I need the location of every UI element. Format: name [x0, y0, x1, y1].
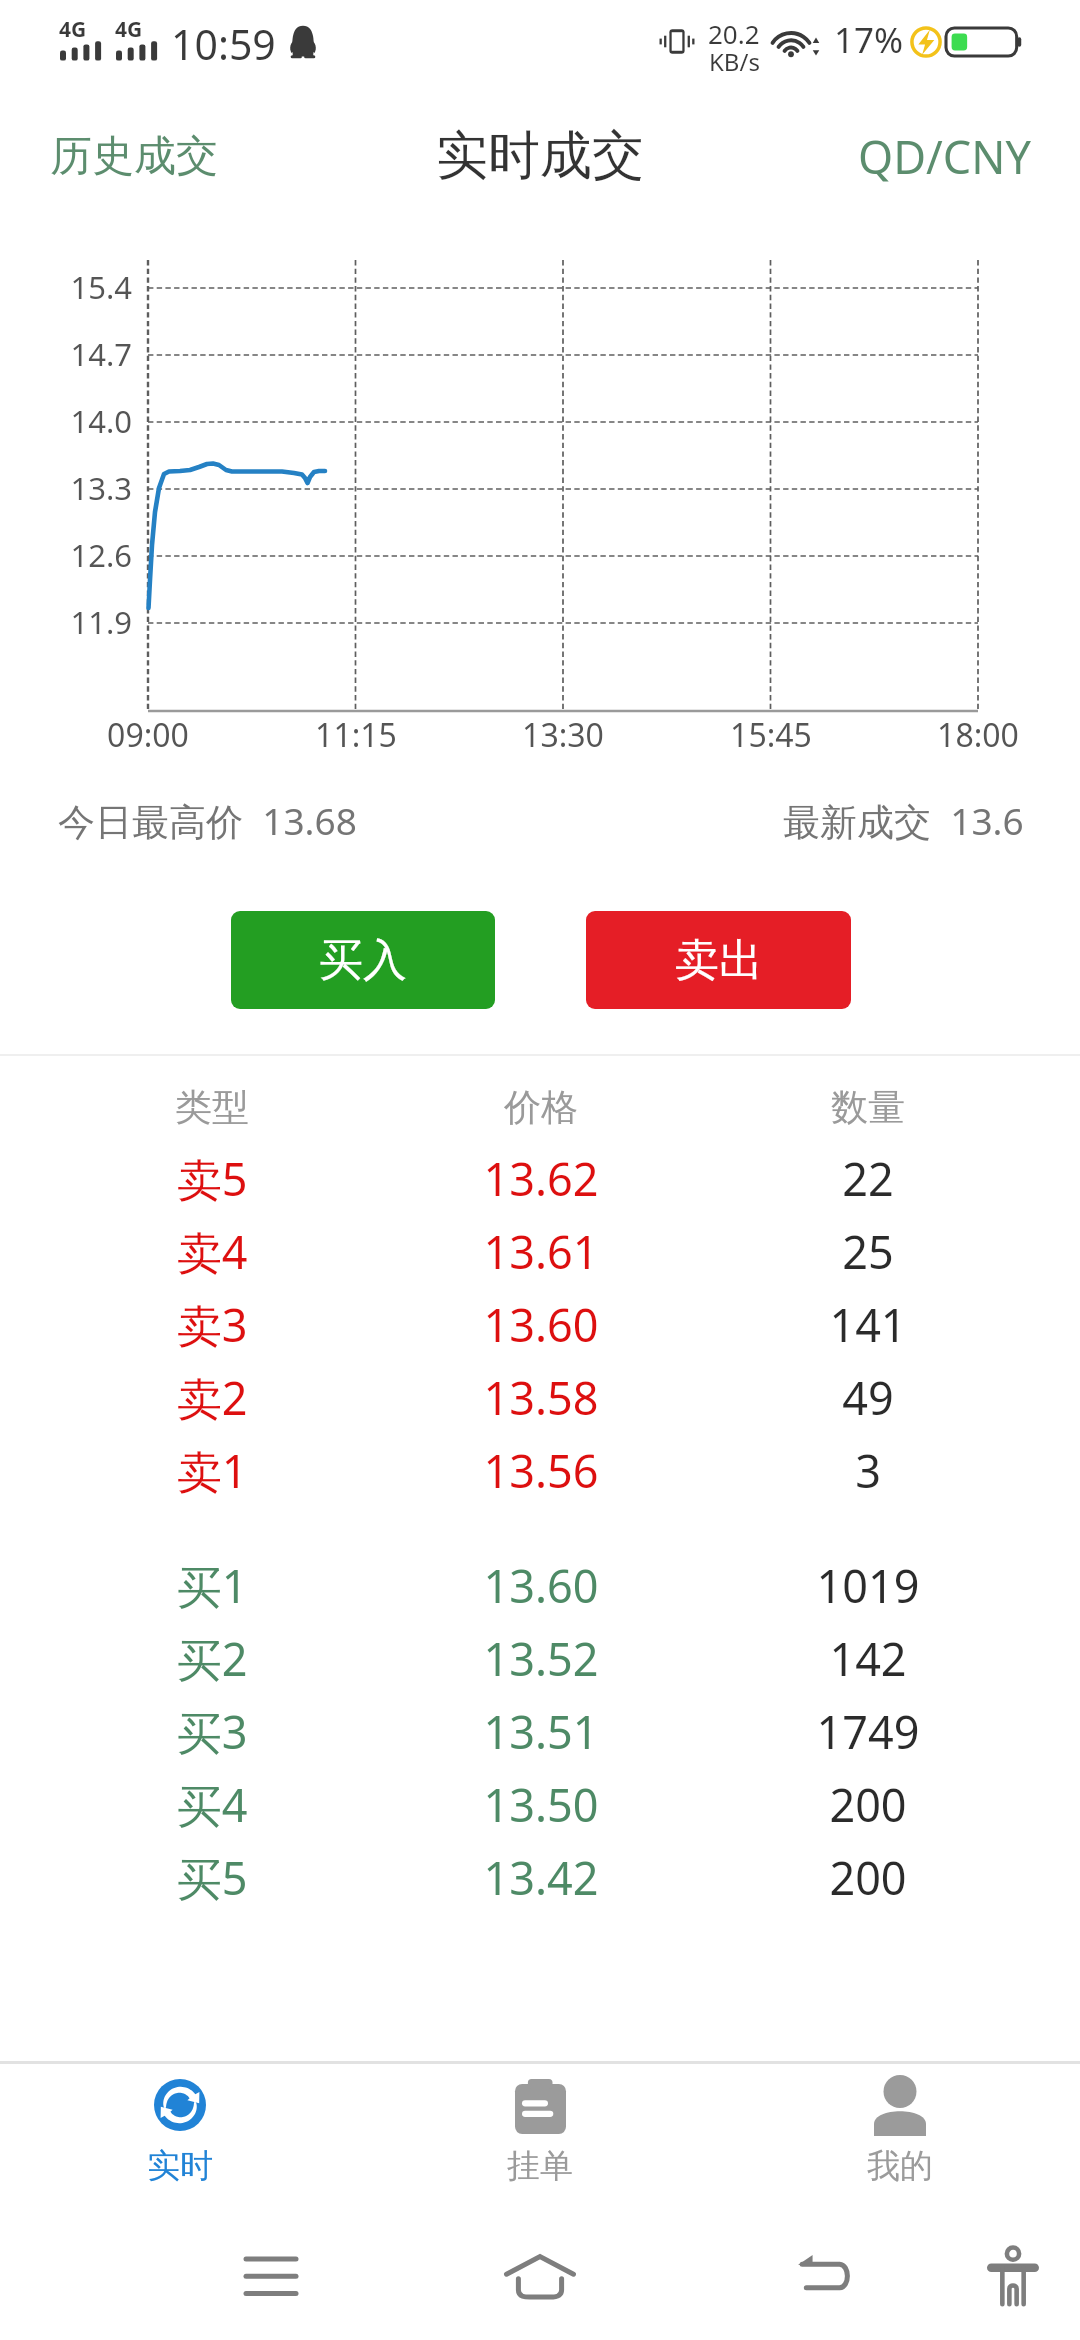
- staticText: 买5: [112, 1847, 312, 1908]
- button[interactable]: 买2: [0, 1622, 1080, 1694]
- button[interactable]: 买4: [0, 1768, 1080, 1840]
- staticText: 价格: [441, 1084, 641, 1131]
- staticText: 13.52: [441, 1628, 641, 1689]
- staticText: 13.3: [0, 467, 132, 509]
- staticText: 10:59: [171, 16, 276, 72]
- staticText: 最新成交 13.6: [783, 795, 1024, 845]
- staticText: 13.42: [441, 1847, 641, 1908]
- staticText: 49: [768, 1367, 968, 1428]
- staticText: 买4: [112, 1774, 312, 1835]
- staticText: 13.51: [441, 1701, 641, 1762]
- staticText: 20.2: [708, 16, 760, 51]
- button[interactable]: 卖出: [586, 911, 851, 1009]
- staticText: 实时成交: [436, 123, 644, 189]
- staticText: 142: [768, 1628, 968, 1689]
- staticText: 11:15: [286, 713, 426, 757]
- staticText: 今日最高价 13.68: [58, 795, 357, 845]
- staticText: 13.61: [441, 1221, 641, 1282]
- staticText: 实时: [147, 2145, 213, 2187]
- staticText: 买2: [112, 1628, 312, 1689]
- staticText: 我的: [867, 2145, 933, 2187]
- staticText: 11.9: [0, 601, 132, 643]
- button[interactable]: 卖2: [0, 1361, 1080, 1433]
- staticText: 13.58: [441, 1367, 641, 1428]
- button[interactable]: 挂单: [360, 2061, 720, 2211]
- staticText: 数量: [768, 1084, 968, 1131]
- button[interactable]: QD/CNY: [828, 112, 1080, 201]
- staticText: 13.60: [441, 1294, 641, 1355]
- button[interactable]: 卖5: [0, 1142, 1080, 1214]
- button[interactable]: 卖3: [0, 1288, 1080, 1360]
- staticText: 历史成交: [50, 130, 218, 183]
- button[interactable]: 卖4: [0, 1215, 1080, 1287]
- staticText: QD/CNY: [858, 126, 1031, 187]
- staticText: 1749: [768, 1701, 968, 1762]
- button[interactable]: Home: [485, 2231, 595, 2321]
- button[interactable]: Recent apps: [216, 2231, 326, 2321]
- button[interactable]: 买3: [0, 1695, 1080, 1767]
- staticText: 卖4: [112, 1221, 312, 1282]
- button[interactable]: Back: [769, 2231, 879, 2321]
- staticText: 15:45: [701, 713, 841, 757]
- staticText: 13.56: [441, 1440, 641, 1501]
- button[interactable]: 我的: [720, 2061, 1080, 2211]
- staticText: 09:00: [78, 713, 218, 757]
- staticText: 13.50: [441, 1774, 641, 1835]
- staticText: 13:30: [493, 713, 633, 757]
- staticText: 17%: [834, 16, 904, 64]
- staticText: 200: [768, 1774, 968, 1835]
- staticText: 25: [768, 1221, 968, 1282]
- button[interactable]: 买入: [231, 911, 495, 1009]
- staticText: 买3: [112, 1701, 312, 1762]
- staticText: 挂单: [507, 2145, 573, 2187]
- staticText: 15.4: [0, 266, 132, 308]
- button[interactable]: 实时: [0, 2061, 360, 2211]
- staticText: 类型: [112, 1084, 312, 1131]
- staticText: 1019: [768, 1555, 968, 1616]
- staticText: 22: [768, 1148, 968, 1209]
- staticText: 13.62: [441, 1148, 641, 1209]
- staticText: 卖3: [112, 1294, 312, 1355]
- staticText: 200: [768, 1847, 968, 1908]
- staticText: 13.60: [441, 1555, 641, 1616]
- staticText: 18:00: [908, 713, 1048, 757]
- staticText: 买1: [112, 1555, 312, 1616]
- staticText: 卖出: [675, 933, 763, 988]
- button[interactable]: 买1: [0, 1549, 1080, 1621]
- staticText: 141: [768, 1294, 968, 1355]
- button[interactable]: 历史成交: [0, 116, 248, 197]
- staticText: 卖1: [112, 1440, 312, 1501]
- staticText: KB/s: [709, 45, 760, 78]
- staticText: 14.7: [0, 333, 132, 375]
- staticText: 12.6: [0, 534, 132, 576]
- staticText: 卖5: [112, 1148, 312, 1209]
- staticText: 买入: [319, 933, 407, 988]
- button[interactable]: 卖1: [0, 1434, 1080, 1506]
- staticText: 4G: [115, 15, 143, 44]
- button[interactable]: 买5: [0, 1841, 1080, 1913]
- staticText: 卖2: [112, 1367, 312, 1428]
- staticText: 3: [768, 1440, 968, 1501]
- staticText: 4G: [59, 15, 87, 44]
- button[interactable]: Accessibility: [958, 2231, 1068, 2321]
- staticText: 14.0: [0, 400, 132, 442]
